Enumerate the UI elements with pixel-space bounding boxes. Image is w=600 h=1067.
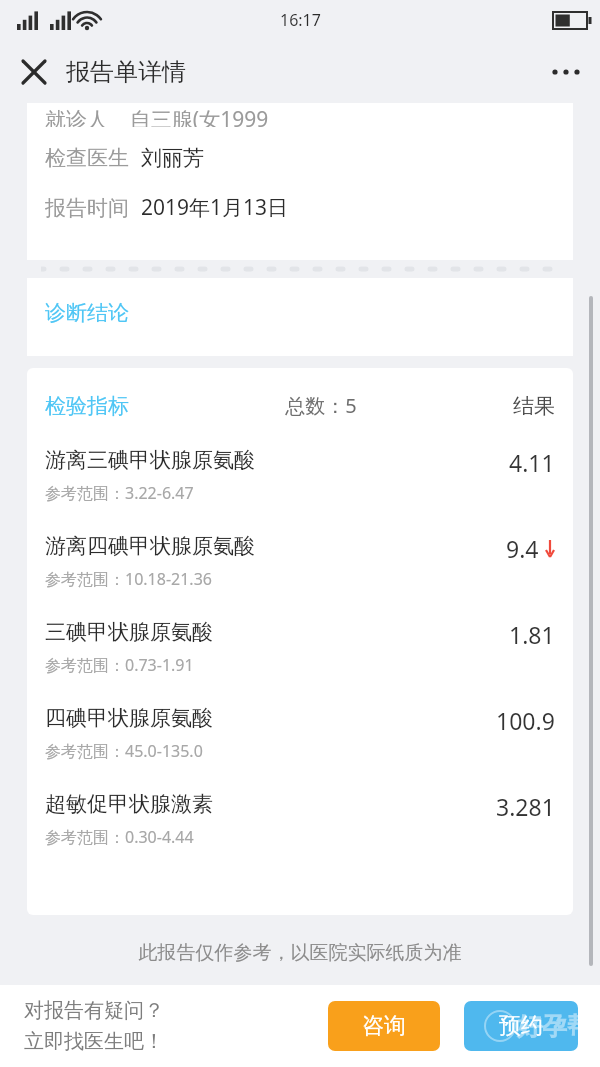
staticText: 参考范围：0.30-4.44 xyxy=(45,826,194,848)
staticText: 诊断结论 xyxy=(45,300,129,326)
staticText: 2019年1月13日 xyxy=(141,193,289,222)
button[interactable]: 超敏促甲状腺激素 xyxy=(27,789,573,875)
staticText: 检验指标 xyxy=(45,393,129,419)
staticText: 报告单详情 xyxy=(66,57,186,87)
staticText: 就诊人 自三腺(女1999 xyxy=(45,105,269,127)
staticText: 参考范围：0.73-1.91 xyxy=(45,654,194,676)
button[interactable]: 游离四碘甲状腺原氨酸 xyxy=(27,531,573,617)
staticText: 游离四碘甲状腺原氨酸 xyxy=(45,533,255,559)
staticText: 此报告仅作参考，以医院实际纸质为准 xyxy=(27,941,573,965)
staticText: 检查医生 xyxy=(45,145,129,171)
staticText: 1.81 xyxy=(509,619,555,650)
button[interactable]: More options xyxy=(540,46,592,98)
staticText: 对报告有疑问？ xyxy=(24,998,164,1023)
staticText: 参考范围：3.22-6.47 xyxy=(45,482,194,504)
staticText: 9.4 xyxy=(506,533,539,564)
staticText: 16:17 xyxy=(280,9,321,31)
staticText: 超敏促甲状腺激素 xyxy=(45,791,213,817)
staticText: 参考范围：10.18-21.36 xyxy=(45,568,212,590)
button[interactable]: 咨询 xyxy=(328,1001,440,1051)
staticText: 4.11 xyxy=(509,447,555,478)
staticText: 游离三碘甲状腺原氨酸 xyxy=(45,447,255,473)
staticText: 3.281 xyxy=(496,791,555,822)
button[interactable]: 四碘甲状腺原氨酸 xyxy=(27,703,573,789)
staticText: 四碘甲状腺原氨酸 xyxy=(45,705,213,731)
staticText: 结果 xyxy=(513,393,555,419)
staticText: 总数：5 xyxy=(129,392,513,419)
staticText: 咨询 xyxy=(362,1012,406,1040)
button[interactable]: 三碘甲状腺原氨酸 xyxy=(27,617,573,703)
button[interactable]: 预约 xyxy=(464,1001,578,1051)
button[interactable]: 游离三碘甲状腺原氨酸 xyxy=(27,445,573,531)
button[interactable]: Close xyxy=(10,48,58,96)
staticText: 报告时间 xyxy=(45,195,129,221)
staticText: 刘丽芳 xyxy=(141,145,204,171)
staticText: 三碘甲状腺原氨酸 xyxy=(45,619,213,645)
staticText: 100.9 xyxy=(496,705,555,736)
staticText: 立即找医生吧！ xyxy=(24,1029,164,1054)
staticText: 好孕帮 xyxy=(517,1011,592,1042)
staticText: 参考范围：45.0-135.0 xyxy=(45,740,203,762)
staticText: 预约 xyxy=(499,1012,543,1040)
